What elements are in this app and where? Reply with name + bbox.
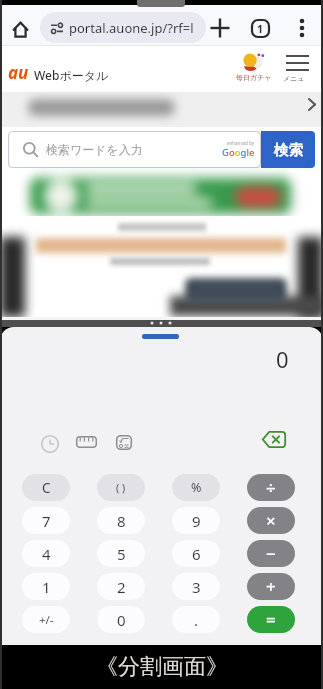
button[interactable]: 0: [97, 606, 145, 633]
button[interactable]: 検索ワードを入力: [8, 131, 261, 168]
staticText: 4: [42, 544, 51, 564]
button[interactable]: [295, 17, 309, 39]
button[interactable]: 1: [251, 19, 270, 38]
staticText: 7: [42, 511, 51, 531]
button[interactable]: ( ): [97, 474, 145, 501]
staticText: 3: [192, 577, 201, 597]
staticText: 6: [192, 544, 201, 564]
button[interactable]: [41, 435, 59, 453]
staticText: +/-: [39, 612, 54, 628]
button[interactable]: %: [172, 474, 220, 501]
button[interactable]: [0, 320, 323, 327]
button[interactable]: 2: [97, 573, 145, 600]
button[interactable]: [76, 436, 97, 448]
button[interactable]: −: [247, 540, 295, 567]
staticText: メニュー: [283, 74, 311, 83]
button[interactable]: ×: [247, 507, 295, 534]
button[interactable]: メニュー: [283, 55, 311, 83]
staticText: ×: [266, 509, 276, 532]
staticText: +: [266, 575, 276, 598]
staticText: ( ): [116, 481, 126, 495]
staticText: 0: [117, 610, 126, 630]
button[interactable]: 検索: [261, 131, 315, 168]
staticText: 毎日ガチャ: [236, 73, 272, 82]
staticText: 1: [42, 577, 51, 597]
button[interactable]: 4: [22, 540, 70, 567]
staticText: 9: [192, 511, 201, 531]
button[interactable]: portal.auone.jp/?rf=l: [40, 12, 206, 43]
staticText: enhanced by: [227, 140, 255, 146]
button[interactable]: .: [172, 606, 220, 633]
button[interactable]: 毎日ガチャ: [235, 53, 273, 82]
button[interactable]: +/-: [22, 606, 70, 633]
staticText: 5: [117, 544, 126, 564]
staticText: au: [8, 61, 29, 84]
button[interactable]: 9: [172, 507, 220, 534]
staticText: =: [266, 608, 276, 631]
staticText: portal.auone.jp/?rf=l: [69, 19, 194, 37]
button[interactable]: [210, 18, 230, 38]
button[interactable]: [12, 21, 29, 38]
staticText: 8: [117, 511, 126, 531]
button[interactable]: [116, 435, 132, 450]
staticText: .: [194, 610, 199, 630]
staticText: −: [266, 542, 276, 565]
button[interactable]: [0, 92, 323, 127]
staticText: 1: [257, 22, 264, 36]
button[interactable]: ÷: [247, 474, 295, 501]
staticText: 検索: [274, 141, 303, 159]
staticText: 検索ワードを入力: [46, 142, 143, 157]
staticText: 0: [276, 344, 289, 374]
staticText: 《分割画面》: [96, 653, 228, 681]
button[interactable]: 1: [22, 573, 70, 600]
button[interactable]: =: [247, 606, 295, 633]
button[interactable]: +: [247, 573, 295, 600]
staticText: C: [42, 479, 51, 497]
button[interactable]: 6: [172, 540, 220, 567]
button[interactable]: 8: [97, 507, 145, 534]
button[interactable]: [142, 334, 179, 339]
button[interactable]: 5: [97, 540, 145, 567]
staticText: ÷: [266, 476, 276, 499]
staticText: 2: [117, 577, 126, 597]
staticText: Google: [222, 146, 255, 159]
button[interactable]: [262, 431, 286, 448]
button[interactable]: 7: [22, 507, 70, 534]
staticText: %: [191, 479, 202, 496]
button[interactable]: C: [22, 474, 70, 501]
button[interactable]: 3: [172, 573, 220, 600]
staticText: Webポータル: [34, 67, 109, 83]
button[interactable]: [30, 178, 291, 214]
